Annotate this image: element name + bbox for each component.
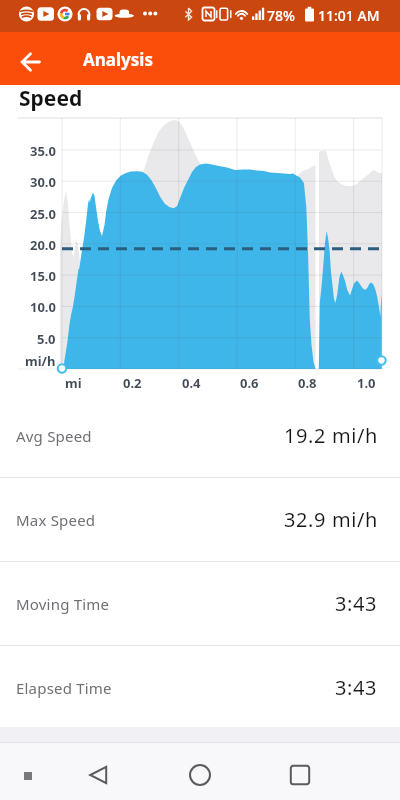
staticText: 0.2 [123, 374, 142, 392]
staticText: 0.4 [182, 374, 201, 392]
button[interactable]: Elapsed Time [0, 646, 400, 729]
staticText: 3:43 [335, 590, 378, 617]
button[interactable] [78, 755, 118, 795]
staticText: Analysis [83, 48, 153, 71]
staticText: 0.8 [298, 374, 317, 392]
staticText: 32.9 mi/h [284, 506, 378, 533]
button[interactable] [280, 755, 320, 795]
staticText: 5.0 [37, 330, 56, 346]
staticText: Max Speed [16, 510, 96, 530]
staticText: Elapsed Time [16, 678, 112, 698]
button[interactable]: Moving Time [0, 562, 400, 645]
button[interactable]: Avg Speed [0, 394, 400, 477]
button[interactable] [180, 755, 220, 795]
staticText: 35.0 [30, 142, 56, 158]
staticText: 20.0 [30, 236, 56, 252]
button[interactable] [8, 44, 54, 80]
staticText: 0.6 [240, 374, 259, 392]
staticText: 11:01 AM [318, 6, 380, 25]
staticText: 10.0 [30, 298, 56, 314]
staticText: 25.0 [30, 205, 56, 221]
staticText: 15.0 [30, 267, 56, 283]
staticText: mi [65, 374, 82, 392]
staticText: Avg Speed [16, 426, 92, 446]
staticText: Speed [19, 84, 83, 113]
staticText: 19.2 mi/h [284, 422, 378, 449]
button[interactable]: Max Speed [0, 478, 400, 561]
staticText: 3:43 [335, 674, 378, 701]
staticText: Moving Time [16, 594, 110, 614]
staticText: 30.0 [30, 173, 56, 189]
staticText: 78% [267, 6, 295, 25]
staticText: 1.0 [357, 374, 376, 392]
staticText: mi/h [25, 352, 56, 368]
